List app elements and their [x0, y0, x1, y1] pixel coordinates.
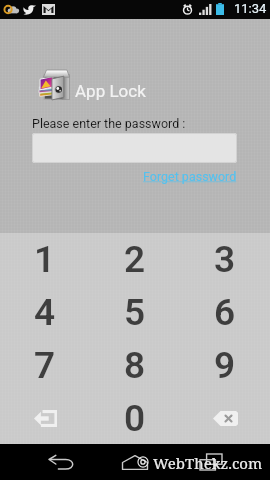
staticText: 11:34: [234, 1, 267, 16]
staticText: 2: [124, 238, 146, 281]
button[interactable]: 1: [0, 233, 90, 286]
button[interactable]: Delete: [180, 392, 270, 445]
button[interactable]: Exit: [0, 392, 90, 445]
button[interactable]: 8: [90, 339, 180, 392]
staticText: 8: [124, 344, 146, 387]
button[interactable]: [32, 133, 237, 163]
staticText: 1: [34, 238, 56, 281]
staticText: 6: [214, 291, 236, 334]
staticText: 0: [124, 397, 146, 440]
button[interactable]: 6: [180, 286, 270, 339]
button[interactable]: 3: [180, 233, 270, 286]
staticText: Please enter the password :: [32, 116, 186, 131]
button[interactable]: Back: [25, 444, 97, 480]
button[interactable]: 0: [90, 392, 180, 445]
button[interactable]: 7: [0, 339, 90, 392]
staticText: 4: [34, 291, 56, 334]
staticText: WebThekz.com: [153, 453, 263, 473]
staticText: 7: [34, 344, 56, 387]
button[interactable]: 9: [180, 339, 270, 392]
button[interactable]: 5: [90, 286, 180, 339]
staticText: 5: [124, 291, 146, 334]
staticText: 3: [214, 238, 236, 281]
button[interactable]: Home: [109, 444, 161, 480]
button[interactable]: 4: [0, 286, 90, 339]
button[interactable]: 2: [90, 233, 180, 286]
button[interactable]: Recent apps: [185, 444, 237, 480]
staticText: 9: [214, 344, 236, 387]
button[interactable]: Forget password: [143, 169, 237, 184]
staticText: App Lock: [75, 81, 146, 101]
